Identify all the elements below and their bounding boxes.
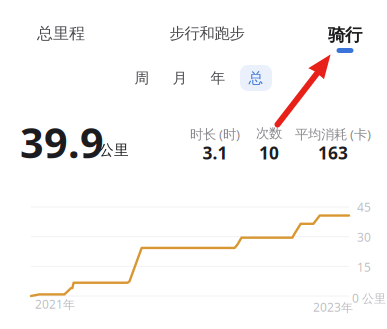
button[interactable]: 总里程 (30, 20, 92, 47)
button[interactable]: 步行和跑步 (167, 20, 247, 47)
staticText: 3.1 (202, 141, 227, 165)
staticText: 15 (357, 259, 371, 275)
staticText: 总 (248, 69, 263, 87)
staticText: 10 (259, 141, 279, 165)
button[interactable]: 周 (126, 65, 158, 91)
button[interactable]: 骑行 (322, 17, 368, 60)
staticText: 163 (318, 141, 348, 165)
staticText: 周 (134, 69, 149, 87)
staticText: 骑行 (328, 24, 362, 46)
staticText: 年 (210, 69, 225, 87)
staticText: 次数 (256, 125, 282, 142)
staticText: 总里程 (37, 23, 85, 44)
button[interactable]: 总 (240, 65, 272, 91)
staticText: 2021年 (35, 296, 75, 312)
staticText: 公里 (99, 141, 129, 159)
staticText: 2023年 (313, 299, 353, 315)
button[interactable]: 月 (164, 65, 196, 91)
staticText: 30 (357, 229, 371, 245)
staticText: 45 (357, 199, 371, 215)
staticText: 0 公里 (352, 290, 386, 306)
staticText: 步行和跑步 (169, 24, 244, 43)
staticText: 月 (172, 69, 187, 87)
button[interactable]: 年 (202, 65, 234, 91)
staticText: 平均消耗 (卡) (295, 125, 371, 143)
staticText: 时长 (时) (190, 125, 240, 143)
staticText: 39.9 (20, 114, 104, 170)
